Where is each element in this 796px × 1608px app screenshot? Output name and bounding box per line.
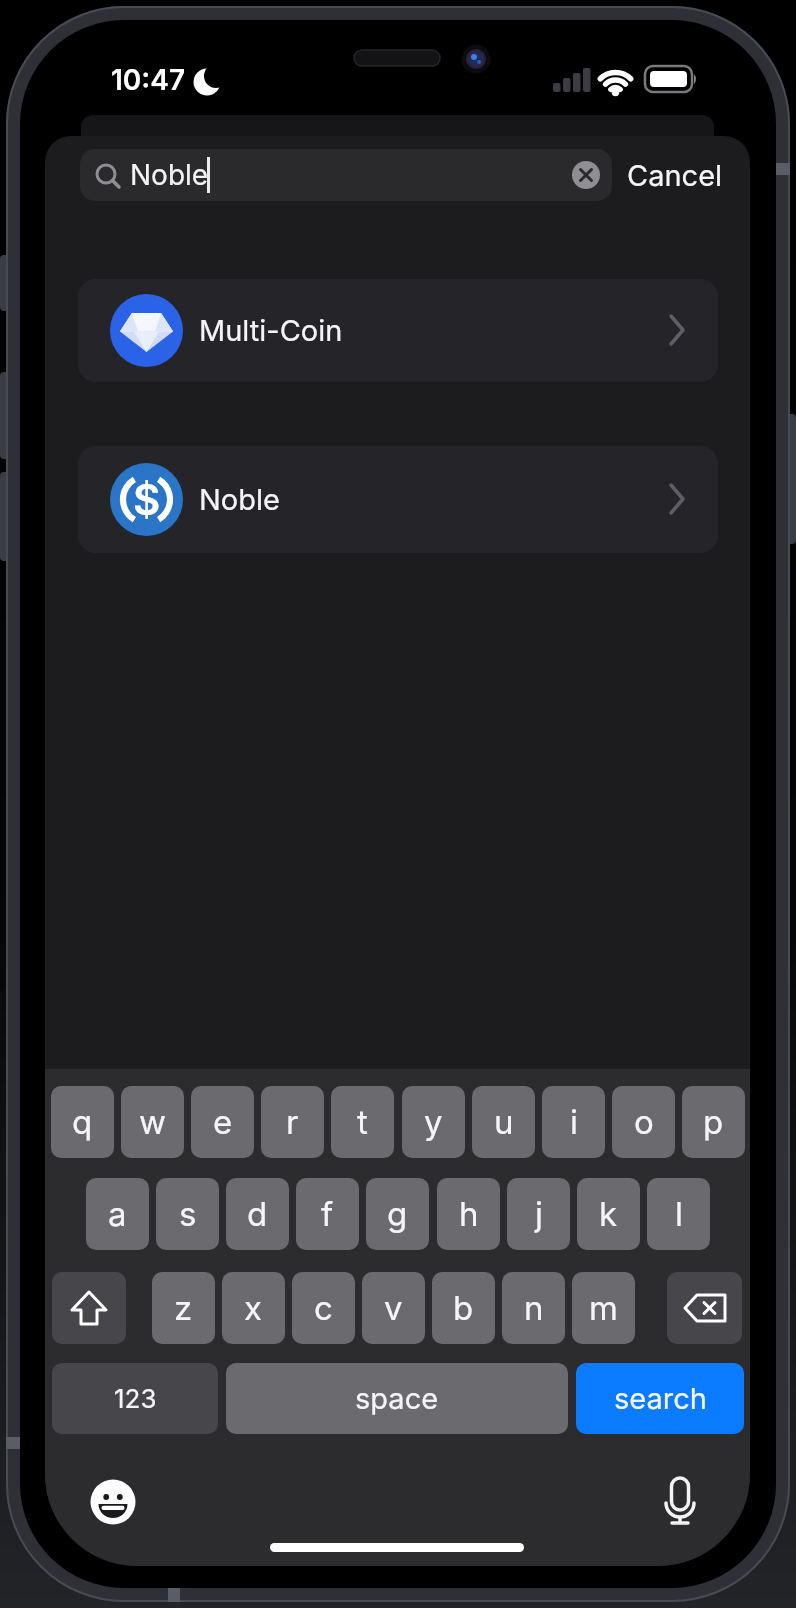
staticText: Noble xyxy=(199,482,280,517)
button[interactable]: s xyxy=(156,1178,219,1250)
button[interactable]: p xyxy=(682,1086,745,1158)
button[interactable]: Multi-Coin xyxy=(78,279,718,382)
staticText: n xyxy=(524,1288,544,1328)
staticText: s xyxy=(179,1194,197,1234)
button[interactable] xyxy=(656,1472,704,1528)
button[interactable]: y xyxy=(402,1086,465,1158)
staticText: q xyxy=(72,1102,93,1142)
button[interactable] xyxy=(52,1272,126,1344)
button[interactable]: z xyxy=(152,1272,215,1344)
staticText: h xyxy=(459,1194,479,1234)
staticText: u xyxy=(494,1102,514,1142)
staticText: Noble xyxy=(130,158,209,192)
button[interactable]: a xyxy=(86,1178,149,1250)
button[interactable]: d xyxy=(226,1178,289,1250)
staticText: t xyxy=(357,1102,368,1142)
staticText: y xyxy=(424,1102,443,1142)
button[interactable]: i xyxy=(542,1086,605,1158)
button[interactable]: w xyxy=(121,1086,184,1158)
staticText: $ xyxy=(133,474,161,525)
staticText: w xyxy=(139,1102,167,1142)
button[interactable]: search xyxy=(576,1363,744,1434)
button[interactable]: 123 xyxy=(52,1363,218,1434)
button[interactable]: k xyxy=(577,1178,640,1250)
button[interactable]: Cancel xyxy=(611,149,738,201)
button[interactable]: u xyxy=(472,1086,535,1158)
staticText: x xyxy=(244,1288,263,1328)
button[interactable]: t xyxy=(331,1086,394,1158)
staticText: e xyxy=(213,1102,233,1142)
button[interactable]: Noble xyxy=(80,149,612,201)
staticText: r xyxy=(286,1102,299,1142)
staticText: a xyxy=(108,1194,127,1234)
button[interactable]: o xyxy=(612,1086,675,1158)
staticText: search xyxy=(614,1381,707,1416)
button[interactable]: l xyxy=(647,1178,710,1250)
button[interactable]: g xyxy=(366,1178,429,1250)
staticText: l xyxy=(675,1194,683,1234)
button[interactable]: j xyxy=(507,1178,570,1250)
button[interactable]: f xyxy=(296,1178,359,1250)
staticText: v xyxy=(384,1288,403,1328)
button[interactable]: r xyxy=(261,1086,324,1158)
button[interactable]: space xyxy=(226,1363,568,1434)
button[interactable]: c xyxy=(292,1272,355,1344)
button[interactable]: q xyxy=(51,1086,114,1158)
button[interactable]: h xyxy=(437,1178,500,1250)
button[interactable]: m xyxy=(572,1272,635,1344)
staticText: 123 xyxy=(114,1383,157,1414)
button[interactable]: x xyxy=(222,1272,285,1344)
button[interactable] xyxy=(667,1272,742,1344)
staticText: p xyxy=(703,1102,724,1142)
staticText: 10:47 xyxy=(111,63,186,97)
staticText: b xyxy=(453,1288,474,1328)
staticText: m xyxy=(589,1288,618,1328)
staticText: k xyxy=(599,1194,618,1234)
staticText: Cancel xyxy=(627,158,723,193)
staticText: z xyxy=(174,1288,193,1328)
staticText: o xyxy=(634,1102,654,1142)
staticText: g xyxy=(387,1194,408,1234)
staticText: f xyxy=(321,1194,334,1234)
button[interactable]: v xyxy=(362,1272,425,1344)
staticText: i xyxy=(570,1102,578,1142)
button[interactable]: n xyxy=(502,1272,565,1344)
staticText: space xyxy=(355,1381,439,1416)
button[interactable] xyxy=(89,1478,137,1526)
staticText: d xyxy=(247,1194,268,1234)
staticText: j xyxy=(535,1194,543,1234)
button[interactable]: e xyxy=(191,1086,254,1158)
button[interactable]: b xyxy=(432,1272,495,1344)
button[interactable]: $ xyxy=(78,446,718,553)
staticText: Multi-Coin xyxy=(199,313,343,348)
staticText: c xyxy=(314,1288,333,1328)
